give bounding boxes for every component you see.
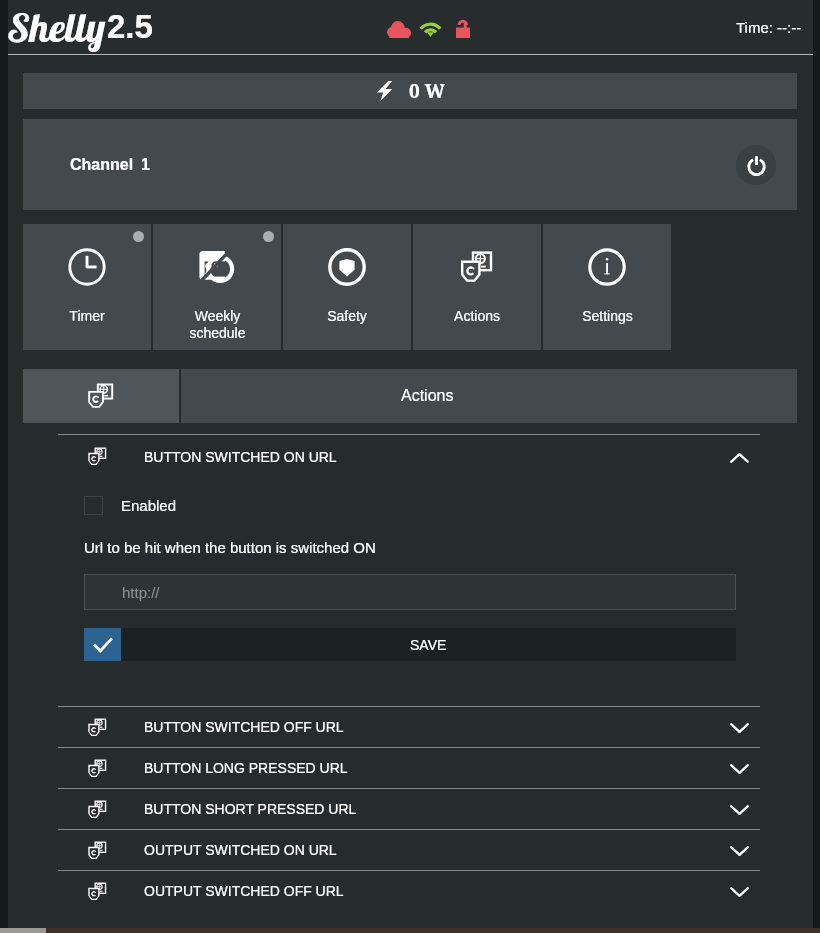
button[interactable]: Actions tab [23, 369, 179, 423]
button[interactable]: BUTTON SHORT PRESSED URL [58, 789, 760, 829]
button[interactable]: Actions [181, 369, 797, 423]
button[interactable]: Actions [413, 224, 541, 350]
staticText: BUTTON SWITCHED OFF URL [144, 719, 344, 735]
staticText: Url to be hit when the button is switche… [84, 539, 376, 556]
staticText: Weekly schedule [189, 308, 246, 341]
button[interactable]: Settings [543, 224, 671, 350]
staticText: Actions [454, 308, 500, 324]
staticText: Actions [401, 387, 454, 405]
button[interactable]: OUTPUT SWITCHED OFF URL [58, 871, 760, 911]
staticText: BUTTON LONG PRESSED URL [144, 760, 348, 776]
staticText: BUTTON SHORT PRESSED URL [144, 801, 357, 817]
button[interactable]: Safety [283, 224, 411, 350]
other: Cloud status [387, 21, 411, 38]
button[interactable]: Weekly schedule [153, 224, 281, 350]
staticText: BUTTON SWITCHED ON URL [144, 449, 337, 465]
button[interactable]: Timer [23, 224, 151, 350]
staticText: Settings [582, 308, 633, 324]
staticText: OUTPUT SWITCHED ON URL [144, 842, 337, 858]
staticText: Shelly [7, 2, 106, 52]
staticText: SAVE [410, 637, 447, 653]
button[interactable]: Toggle channel power [736, 145, 776, 185]
staticText: Time: --:-- [736, 19, 802, 36]
button[interactable]: BUTTON SWITCHED OFF URL [58, 707, 760, 747]
button[interactable]: SAVE [84, 628, 736, 661]
button[interactable]: BUTTON LONG PRESSED URL [58, 748, 760, 788]
staticText: 0 W [409, 78, 445, 104]
staticText: Safety [327, 308, 367, 324]
staticText: OUTPUT SWITCHED OFF URL [144, 883, 344, 899]
other: Security status [456, 20, 470, 38]
button[interactable]: Enabled [84, 496, 177, 515]
staticText: 1 [141, 156, 150, 174]
button[interactable]: BUTTON SWITCHED ON URL [58, 435, 760, 478]
staticText: Timer [69, 308, 105, 324]
staticText: 2.5 [107, 8, 153, 45]
other: WiFi status [420, 21, 441, 37]
staticText: Enabled [121, 497, 177, 514]
staticText: Channel [70, 156, 134, 174]
button[interactable]: OUTPUT SWITCHED ON URL [58, 830, 760, 870]
staticText: http:// [122, 584, 160, 601]
